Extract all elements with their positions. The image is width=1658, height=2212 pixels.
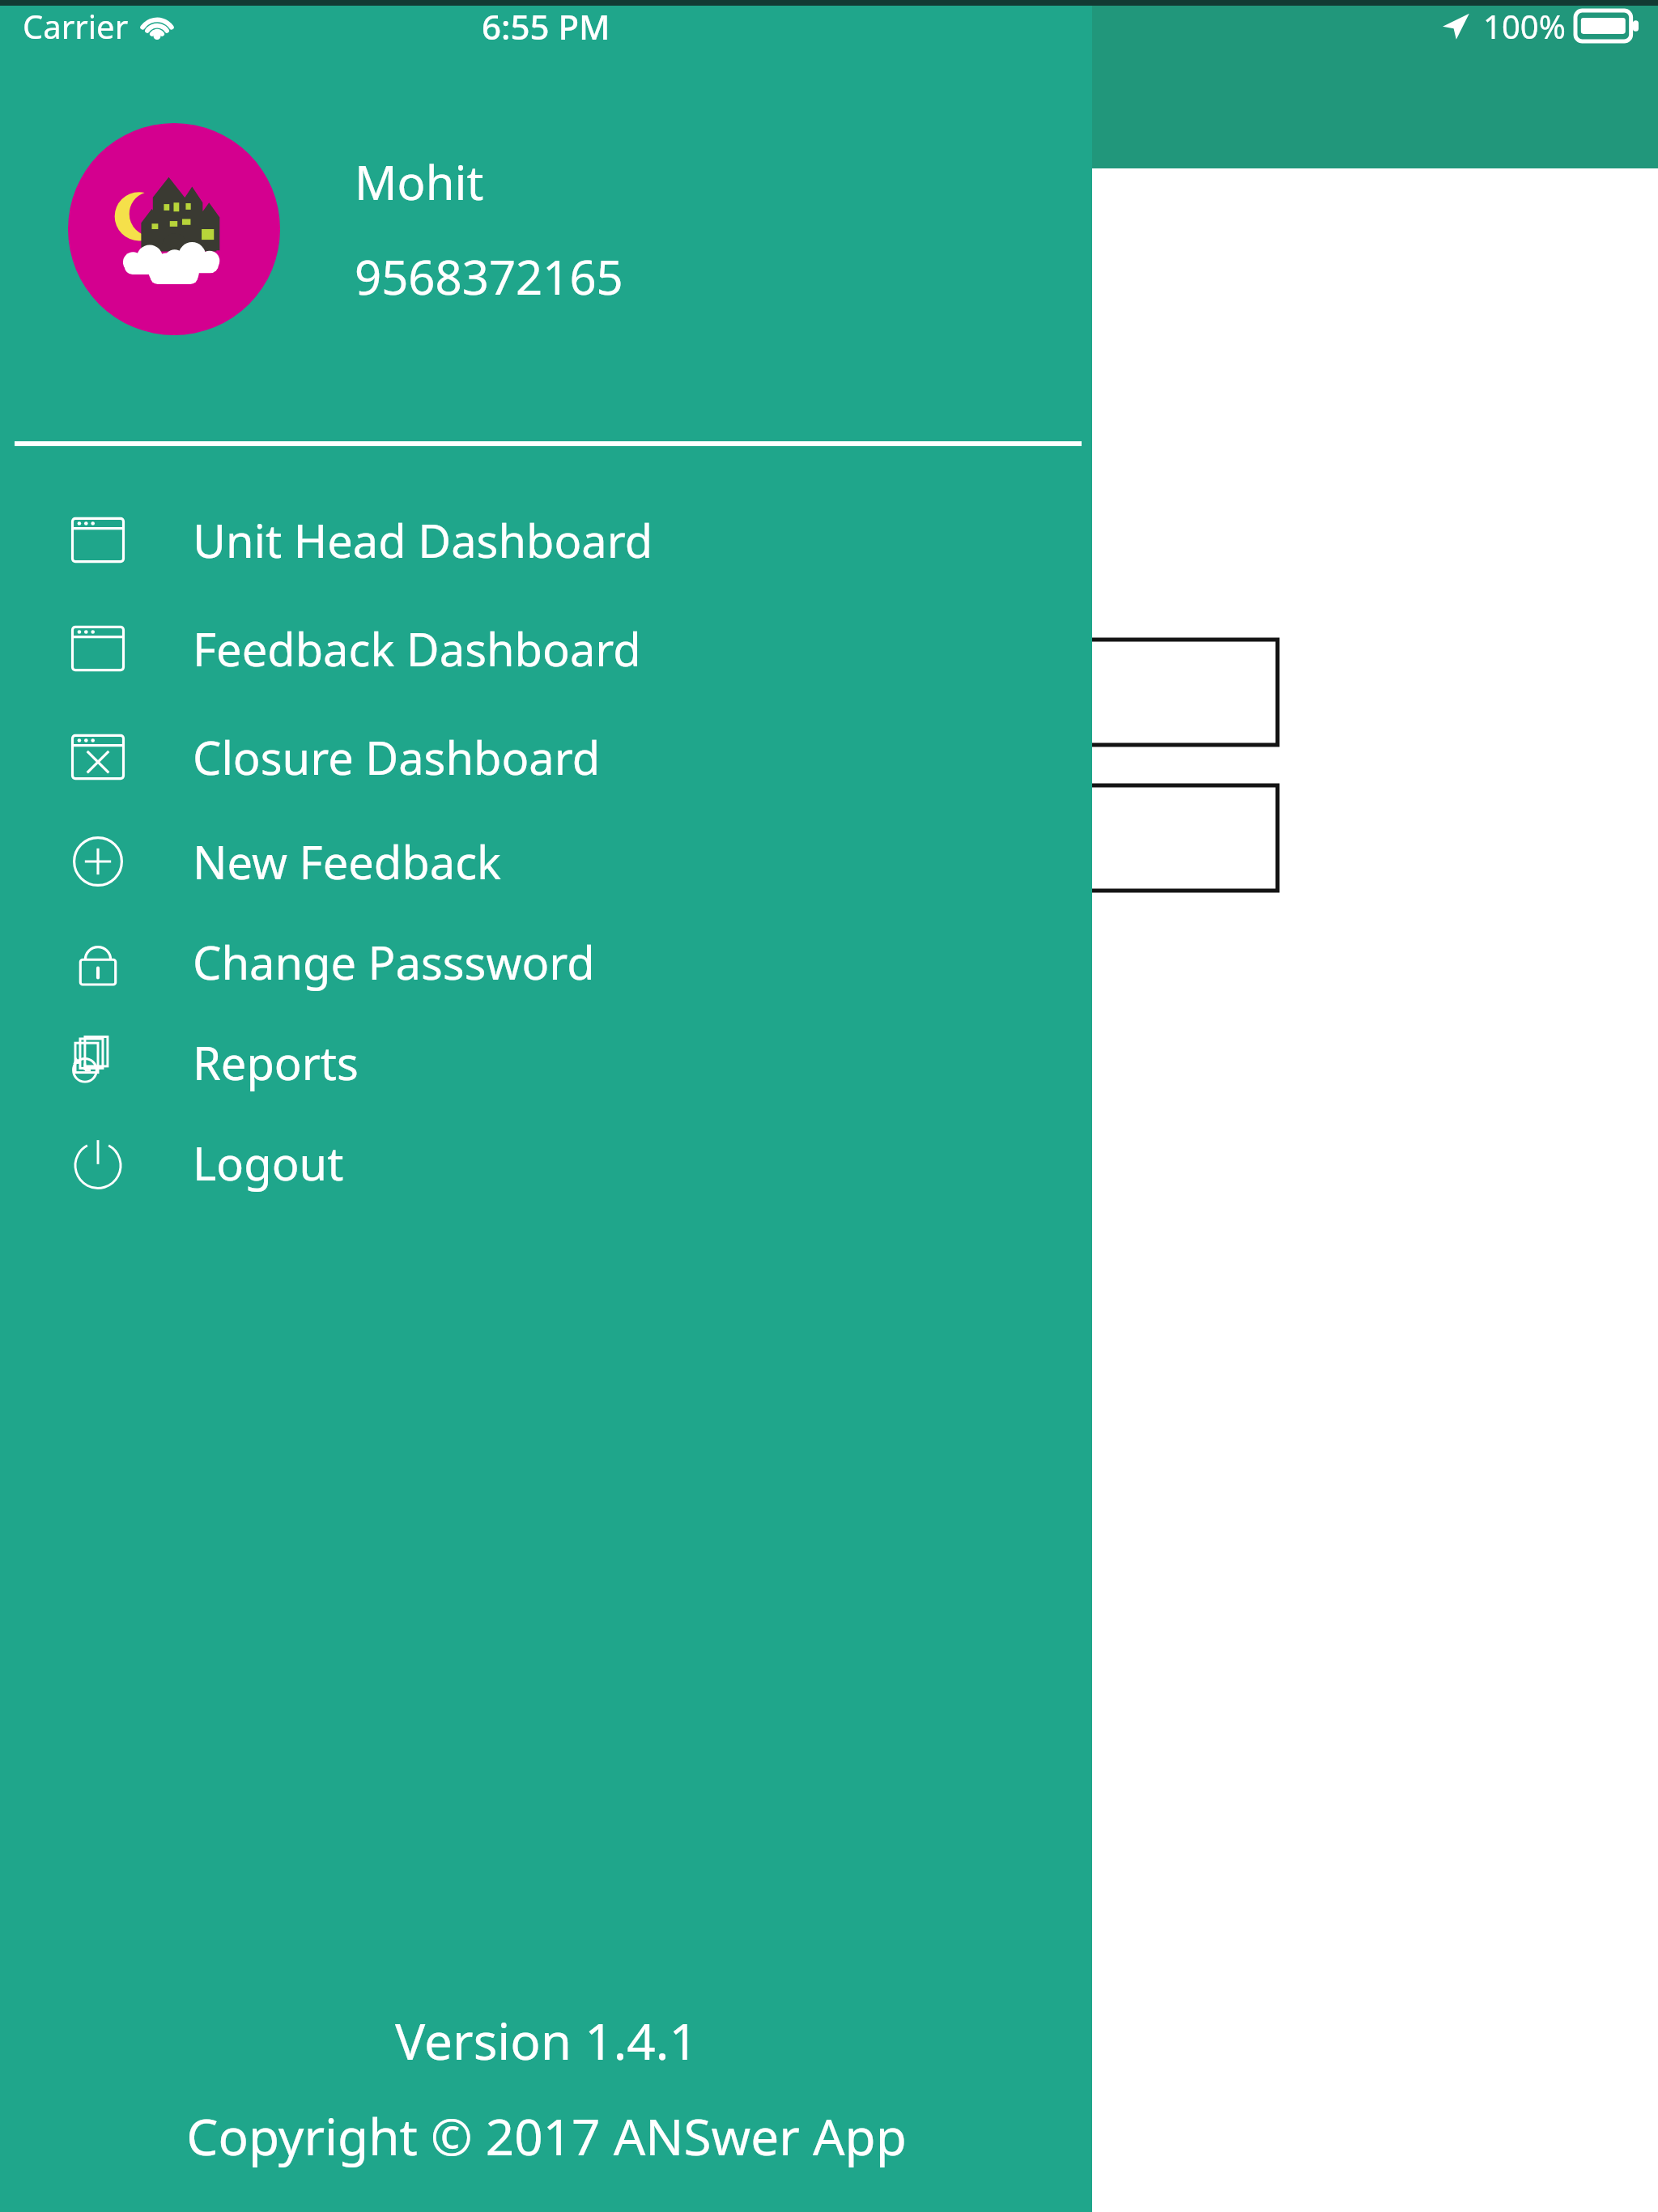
staticText: Unit Head Dashboard [193,509,653,571]
button[interactable]: Feedback Dashboard [0,594,1092,703]
button[interactable]: Unit Head Dashboard [0,486,1092,594]
button[interactable]: Change Passsword [0,912,1092,1012]
staticText: 9568372165 [355,245,623,308]
staticText: New Feedback [193,831,501,892]
staticText: Reports [193,1032,359,1093]
button[interactable]: Reports [0,1012,1092,1112]
staticText: Version 1.4.1 [395,2006,698,2074]
staticText: Copyright © 2017 ANSwer App [186,2102,907,2170]
staticText: 6:55 PM [482,3,610,49]
button[interactable]: New Feedback [0,811,1092,912]
staticText: Logout [193,1132,344,1193]
staticText: Change Passsword [193,931,595,993]
staticText: Mohit [355,150,484,214]
staticText: Feedback Dashboard [193,618,641,679]
button[interactable]: Logout [0,1112,1092,1213]
button[interactable]: Closure Dashboard [0,703,1092,811]
staticText: Carrier [23,4,129,48]
staticText: 100% [1483,4,1566,48]
staticText: Closure Dashboard [193,726,601,788]
